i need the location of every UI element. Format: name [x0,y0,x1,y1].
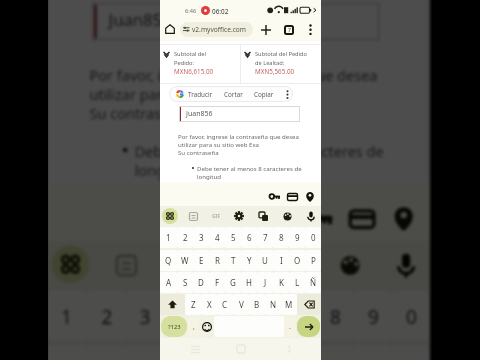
button[interactable]: D [193,272,209,293]
button[interactable]: Themes [330,245,368,283]
button[interactable]: P [305,250,321,271]
button[interactable]: P [392,345,430,360]
button[interactable]: F [209,272,225,293]
button[interactable]: v2.myvoffice.com [180,22,253,37]
button[interactable]: Juan856 [179,106,300,122]
button[interactable]: Shift [160,294,185,315]
button[interactable]: Cortar [224,90,243,99]
button[interactable]: Enter [297,316,320,337]
button[interactable]: Gboard menu [51,245,90,283]
button[interactable]: New tab [258,22,273,37]
button[interactable]: . [284,316,296,337]
button[interactable]: Home [230,338,252,360]
button[interactable]: Voice input [387,245,425,283]
button[interactable]: R [209,250,225,271]
button[interactable]: G [225,272,241,293]
button[interactable]: Z [185,294,201,315]
button[interactable]: H [241,272,257,293]
button[interactable]: GIF [161,245,199,283]
button[interactable]: 7 [278,290,316,340]
button[interactable]: 2 [87,290,125,340]
button[interactable]: 4 [209,227,225,248]
button[interactable]: Settings [231,208,247,224]
button[interactable]: Traducir [188,90,213,99]
button[interactable]: Emoji [199,316,214,337]
button[interactable]: S [177,272,193,293]
button[interactable]: Voice input [303,208,319,224]
button[interactable]: 9 [289,227,305,248]
button[interactable]: Passwords [265,188,283,205]
button[interactable]: C [217,294,233,315]
button[interactable]: 6 [241,227,257,248]
button[interactable]: W [177,250,193,271]
button[interactable]: Clipboard [185,208,201,224]
button[interactable]: Copiar [254,90,274,99]
button[interactable]: 8 [316,290,354,340]
button[interactable]: 6 [239,290,278,340]
button[interactable]: K [273,272,289,293]
button[interactable]: Tabs [281,22,296,37]
button[interactable]: O [289,250,305,271]
button[interactable]: B [249,294,265,315]
button[interactable]: 4 [163,290,201,340]
button[interactable]: 8 [273,227,289,248]
button[interactable]: 9 [354,290,392,340]
button[interactable]: Addresses [382,198,425,238]
button[interactable]: Q [47,345,87,360]
button[interactable]: More options [303,22,317,36]
button[interactable]: Themes [279,208,295,224]
button[interactable]: Translate [273,245,311,283]
button[interactable]: Clipboard [106,245,144,283]
button[interactable]: Passwords [297,198,339,238]
button[interactable]: L [289,272,305,293]
button[interactable]: 1 [160,227,177,248]
button[interactable]: 5 [201,290,239,340]
button[interactable]: Translate [255,208,271,224]
button[interactable]: Payment methods [339,198,382,238]
button[interactable]: Addresses [301,188,319,205]
button[interactable]: N [265,294,281,315]
button[interactable]: Settings [216,245,254,283]
button[interactable]: Y [241,250,257,271]
button[interactable]: M [281,294,297,315]
button[interactable]: V [233,294,249,315]
button[interactable]: , [188,316,199,337]
button[interactable]: 5 [225,227,241,248]
button[interactable]: ?123 [161,316,187,337]
button[interactable]: U [257,250,273,271]
button[interactable]: Ñ [305,272,321,293]
staticText: 06:02 [212,7,229,16]
button[interactable]: Home [162,21,178,37]
button[interactable]: Juan856 [92,3,380,41]
button[interactable]: J [257,272,273,293]
button[interactable]: E [193,250,209,271]
button[interactable]: Q [160,250,177,271]
button[interactable]: Recents [184,338,206,360]
button[interactable]: GIF [208,208,224,224]
button[interactable]: 1 [47,290,87,340]
button[interactable]: A [160,272,177,293]
button[interactable]: Backspace [297,294,321,315]
button[interactable]: T [225,250,241,271]
button[interactable]: I [273,250,289,271]
button[interactable]: E [125,345,163,360]
button[interactable]: X [201,294,217,315]
button[interactable]: 2 [177,227,193,248]
button[interactable]: 3 [193,227,209,248]
button[interactable]: R [163,345,201,360]
button[interactable]: Payment methods [283,188,301,205]
button[interactable]: I [316,345,354,360]
button[interactable]: 0 [392,290,430,340]
button[interactable]: Gboard menu [162,208,178,224]
button[interactable]: 3 [125,290,163,340]
button[interactable]: 0 [305,227,321,248]
button[interactable]: 7 [257,227,273,248]
